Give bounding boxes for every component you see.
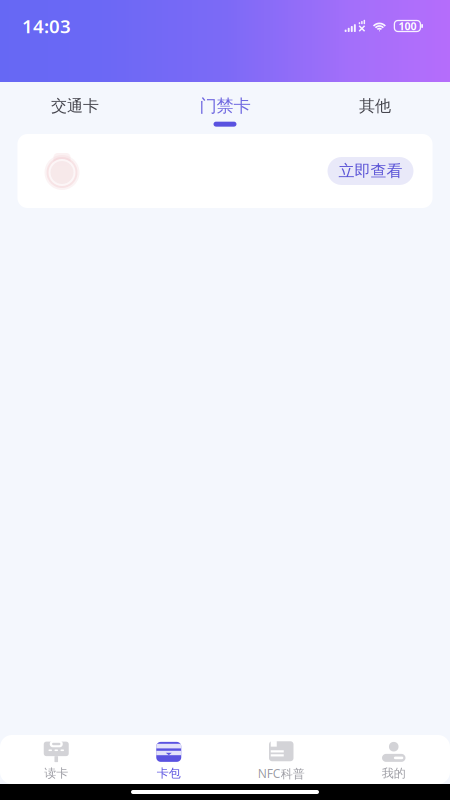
button[interactable]: 门禁卡 — [150, 82, 300, 134]
staticText: 卡包 — [157, 766, 181, 781]
staticText: 其他 — [359, 96, 391, 116]
button[interactable]: 其他 — [300, 82, 450, 134]
staticText: 读卡 — [44, 766, 68, 781]
staticText: 100 — [398, 19, 416, 33]
button[interactable]: 读卡 — [0, 735, 112, 784]
button[interactable]: 立即查看 — [17, 134, 432, 208]
staticText: NFC科普 — [258, 765, 305, 781]
staticText: 立即查看 — [338, 161, 402, 181]
button[interactable]: 我的 — [337, 735, 450, 784]
staticText: 门禁卡 — [199, 95, 250, 117]
button[interactable]: 卡包 — [112, 735, 225, 784]
button[interactable]: 交通卡 — [0, 82, 150, 134]
staticText: 14:03 — [22, 14, 71, 38]
button[interactable]: NFC科普 — [225, 735, 337, 784]
staticText: 我的 — [382, 766, 406, 781]
staticText: 交通卡 — [51, 96, 99, 116]
